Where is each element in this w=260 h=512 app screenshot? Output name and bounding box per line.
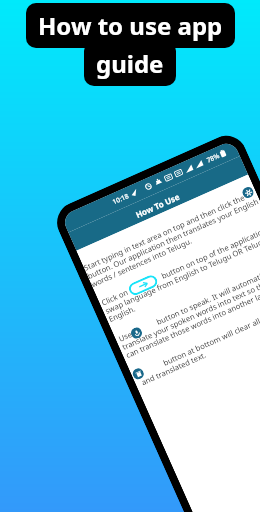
staticText: Use button to speak. It will automatical… bbox=[117, 263, 260, 360]
staticText: guide bbox=[96, 47, 164, 80]
button[interactable]: How to use app bbox=[38, 9, 223, 42]
staticText: button at bottom will clear all the abov… bbox=[136, 296, 260, 387]
button[interactable]: Speak bbox=[129, 326, 144, 340]
staticText: 10:18 bbox=[111, 191, 130, 206]
button[interactable]: Translate bbox=[241, 185, 255, 200]
button[interactable]: Swap language bbox=[127, 273, 159, 297]
button[interactable]: guide bbox=[96, 47, 164, 80]
staticText: How to use app bbox=[38, 9, 223, 42]
staticText: Start typing in text area on top and the… bbox=[82, 188, 260, 289]
button[interactable]: How To Use bbox=[68, 156, 248, 251]
staticText: Click on button on top of the applicatio… bbox=[100, 223, 260, 324]
button[interactable]: Clear bbox=[131, 367, 145, 381]
staticText: How To Use bbox=[134, 191, 181, 220]
staticText: 78% bbox=[205, 151, 222, 164]
